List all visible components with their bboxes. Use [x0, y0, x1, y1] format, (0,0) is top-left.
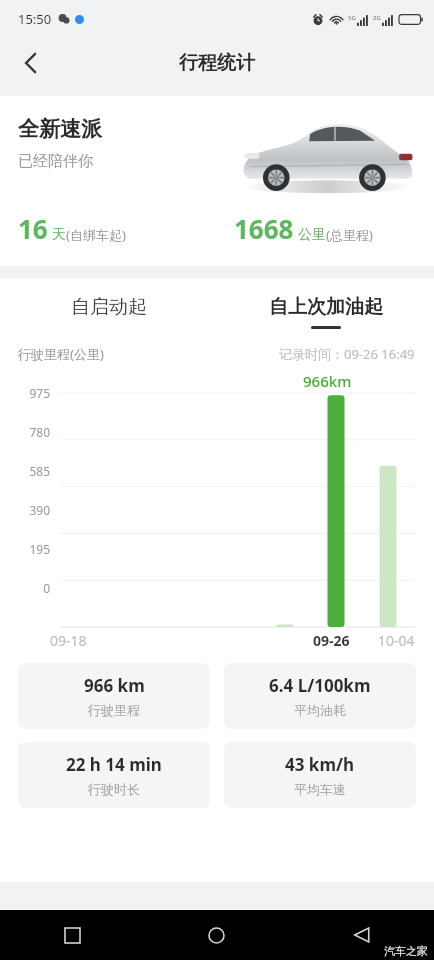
staticText: 平均油耗 [294, 702, 346, 718]
button[interactable]: 43 km/h [224, 742, 416, 808]
staticText: 自启动起 [71, 295, 147, 319]
staticText: 行程统计 [179, 51, 255, 75]
staticText: 966km [303, 371, 352, 391]
staticText: 43 km/h [285, 753, 355, 776]
staticText: 1668 [234, 211, 294, 246]
staticText: 自上次加油起 [269, 295, 383, 319]
staticText: 195 [29, 541, 50, 557]
staticText: 966 km [84, 674, 145, 697]
button[interactable]: Home [144, 910, 289, 960]
staticText: 0 [43, 580, 50, 596]
staticText: 行驶里程 [88, 702, 140, 718]
staticText: 行驶时长 [88, 781, 140, 797]
staticText: 22 h 14 min [66, 753, 162, 776]
button[interactable]: 6.4 L/100km [224, 663, 416, 729]
staticText: 15:50 [18, 10, 52, 28]
staticText: 585 [29, 463, 50, 479]
button[interactable]: Recent apps [0, 910, 144, 960]
staticText: 记录时间：09-26 16:49 [279, 345, 415, 363]
staticText: 10-04 [378, 631, 415, 650]
staticText: 行驶里程(公里) [18, 345, 104, 363]
staticText: 6.4 L/100km [269, 674, 371, 697]
button[interactable]: 22 h 14 min [18, 742, 210, 808]
button[interactable]: 966 km [18, 663, 210, 729]
staticText: 全新速派 [18, 116, 102, 142]
staticText: 公里 [298, 226, 326, 244]
button[interactable]: Back [289, 910, 434, 960]
staticText: 2G [373, 14, 381, 22]
staticText: 09-26 [313, 631, 350, 650]
staticText: 780 [29, 424, 50, 440]
staticText: (总里程) [326, 226, 373, 244]
staticText: 已经陪伴你 [18, 152, 93, 171]
button[interactable]: 自上次加油起 [217, 279, 434, 345]
button[interactable]: 自启动起 [0, 279, 217, 345]
staticText: 975 [29, 385, 50, 401]
staticText: 天 [52, 226, 66, 244]
staticText: 汽车之家 [384, 944, 428, 958]
staticText: 390 [29, 502, 50, 518]
staticText: 5G [348, 14, 356, 22]
staticText: 平均车速 [294, 781, 346, 797]
staticText: (自绑车起) [66, 226, 126, 244]
button[interactable]: 全新速派 [0, 96, 434, 266]
staticText: 16 [18, 211, 48, 246]
button[interactable]: Back [8, 41, 52, 85]
staticText: 09-18 [50, 631, 87, 650]
